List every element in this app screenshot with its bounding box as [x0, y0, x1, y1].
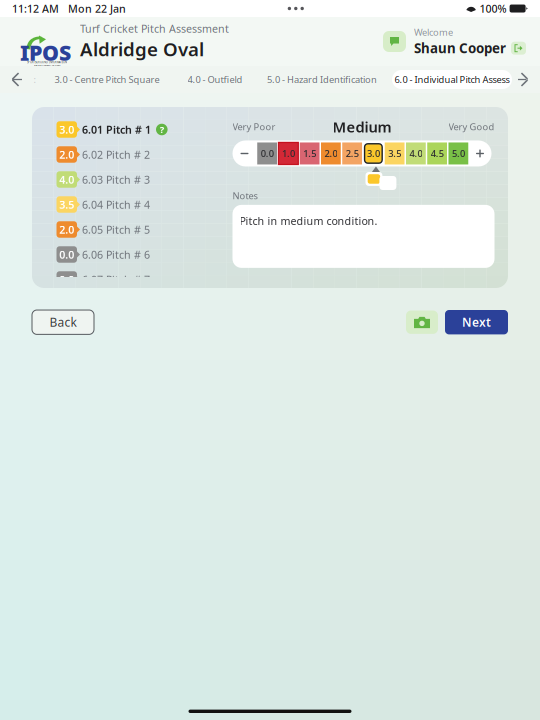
staticText: 0.0	[261, 147, 274, 160]
button[interactable]: Messages	[383, 31, 406, 52]
staticText: 0.0	[59, 247, 74, 262]
staticText: Turf Cricket Pitch Assessment	[80, 21, 229, 36]
staticText: IPOS	[20, 38, 71, 67]
button[interactable]: 2.0	[320, 142, 341, 164]
staticText: 6.01 Pitch # 1	[82, 122, 151, 137]
staticText: 6.03 Pitch # 3	[82, 172, 150, 187]
staticText: ?	[160, 123, 164, 136]
staticText: 4.0	[409, 147, 422, 160]
staticText: 6.05 Pitch # 5	[82, 222, 150, 237]
staticText: Medium	[332, 117, 391, 136]
button[interactable]: 4.0	[56, 167, 216, 192]
staticText: 0.0	[59, 272, 74, 287]
button[interactable]: 2.5	[341, 142, 363, 164]
staticText: 1.0	[282, 147, 295, 160]
button[interactable]: Decrease score	[232, 142, 256, 164]
staticText: 6.07 Pitch # 7	[82, 272, 150, 287]
staticText: :	[33, 73, 36, 86]
button[interactable]: 3.0 - Centre Pitch Square	[42, 69, 172, 89]
staticText: SPORTSGROUND INFORMATION	[27, 60, 67, 64]
button[interactable]: 5.0	[448, 142, 469, 164]
button[interactable]: 1.0	[278, 142, 299, 164]
staticText: Pitch in medium condition.	[239, 214, 377, 228]
button[interactable]: Sign out	[511, 42, 526, 55]
button[interactable]: 2.0	[56, 142, 216, 167]
button[interactable]: 1.5	[299, 142, 320, 164]
button[interactable]: 5.0 - Hazard Identification	[258, 69, 386, 89]
staticText: 6.04 Pitch # 4	[82, 197, 150, 212]
button[interactable]: 4.0 - Outfield	[172, 69, 258, 89]
button[interactable]: Next section	[512, 68, 534, 90]
staticText: 3.0 - Centre Pitch Square	[54, 73, 159, 86]
staticText: 100%	[480, 1, 507, 16]
button[interactable]: 3.0	[363, 142, 384, 164]
staticText: Next	[462, 314, 491, 330]
staticText: 4.0	[59, 172, 74, 187]
button[interactable]: 0.0	[56, 267, 216, 292]
staticText: 6.0 - Individual Pitch Assess	[394, 73, 509, 86]
staticText: 6.02 Pitch # 2	[82, 147, 150, 162]
staticText: 4.0 - Outfield	[187, 73, 242, 86]
staticText: 11:12 AM Mon 22 Jan	[12, 1, 126, 16]
staticText: Welcome	[414, 26, 453, 38]
staticText: 2.0	[59, 222, 74, 237]
button[interactable]: 3.5	[384, 142, 405, 164]
staticText: 4.5	[431, 147, 444, 160]
button[interactable]: 4.5	[426, 142, 448, 164]
staticText: 2.0	[324, 147, 337, 160]
button[interactable]: 3.0	[56, 117, 216, 142]
button[interactable]: 0.0	[56, 242, 216, 267]
button[interactable]: Take photo	[406, 310, 438, 334]
button[interactable]: Back	[32, 310, 94, 334]
staticText: 3.5	[59, 197, 74, 212]
button[interactable]: 2.0	[56, 217, 216, 242]
button[interactable]: 0.0	[256, 142, 278, 164]
button[interactable]: 6.0 - Individual Pitch Assess	[392, 70, 512, 89]
staticText: Shaun Cooper	[414, 39, 506, 57]
staticText: 1.5	[303, 147, 316, 160]
staticText: 3.5	[388, 147, 401, 160]
staticText: 5.0 - Hazard Identification	[267, 73, 377, 86]
staticText: 5.0	[452, 147, 465, 160]
staticText: Aldridge Oval	[80, 37, 204, 61]
staticText: 3.0	[367, 147, 380, 160]
staticText: 3.0	[59, 122, 74, 137]
button[interactable]: 4.0	[405, 142, 426, 164]
staticText: Back	[49, 314, 76, 330]
staticText: 6.06 Pitch # 6	[82, 247, 150, 262]
button[interactable]: Increase score	[469, 142, 491, 164]
staticText: 2.0	[59, 147, 74, 162]
button[interactable]: Previous section	[6, 68, 28, 90]
staticText: Very Good	[448, 120, 494, 133]
staticText: 2.5	[346, 147, 359, 160]
button[interactable]: Next	[445, 310, 508, 334]
staticText: MANAGEMENT SYSTEM	[34, 64, 60, 68]
staticText: Notes	[232, 189, 257, 202]
staticText: Very Poor	[232, 120, 275, 133]
button[interactable]: 3.5	[56, 192, 216, 217]
